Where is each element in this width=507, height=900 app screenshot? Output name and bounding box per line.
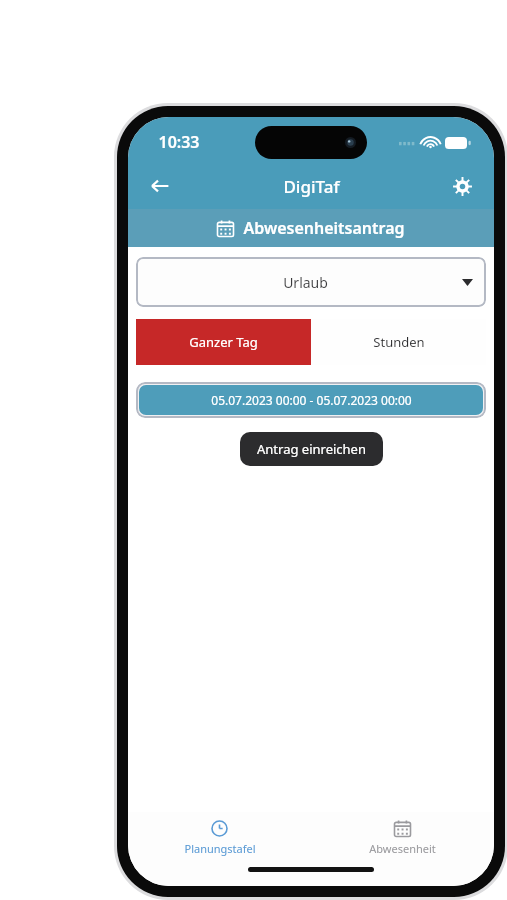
staticText: Antrag einreichen [257,440,366,458]
staticText: Abwesenheit [369,841,436,856]
staticText: Abwesenheitsantrag [243,217,405,239]
button[interactable]: Settings [442,166,482,206]
button[interactable]: Planungstafel [128,812,311,864]
button[interactable]: 05.07.2023 00:00 - 05.07.2023 00:00 [139,385,483,415]
staticText: 10:33 [158,131,200,153]
staticText: 05.07.2023 00:00 - 05.07.2023 00:00 [211,392,412,408]
staticText: Planungstafel [184,841,256,856]
button[interactable]: Abwesenheitsantrag [128,209,494,247]
button[interactable]: Urlaub [136,257,486,307]
button[interactable]: Abwesenheit [311,812,494,864]
staticText: Ganzer Tag [189,333,258,351]
staticText: Urlaub [149,273,462,292]
button[interactable]: Antrag einreichen [240,432,383,466]
button[interactable]: Ganzer Tag [136,319,311,365]
staticText: DigiTaf [283,175,340,198]
button[interactable]: Back [140,166,180,206]
staticText: Stunden [373,333,425,351]
button[interactable]: Stunden [311,319,486,365]
